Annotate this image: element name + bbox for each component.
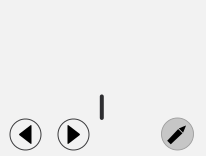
button[interactable]: Redo <box>58 119 89 150</box>
button[interactable]: Pencil <box>161 118 193 150</box>
button[interactable]: Undo <box>10 119 41 150</box>
